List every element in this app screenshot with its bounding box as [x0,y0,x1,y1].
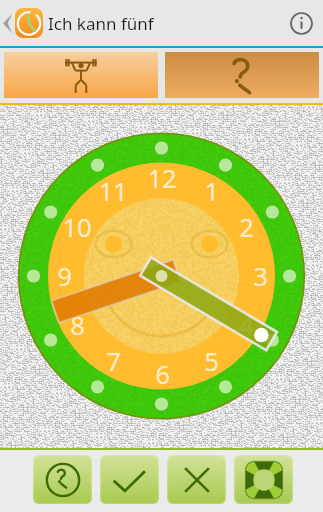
staticText: 11 [98,174,128,209]
button[interactable]: Info [279,0,323,46]
staticText: 6 [155,357,170,392]
button[interactable]: Practice [4,52,158,98]
staticText: 8 [70,308,85,343]
other: Clock app icon [15,8,43,38]
staticText: 7 [106,344,121,379]
button[interactable]: Quiz [165,52,319,98]
staticText: 5 [204,344,219,379]
staticText: 9 [57,259,72,294]
staticText: 2 [239,210,254,245]
staticText: 1 [204,174,219,209]
button[interactable]: Help [234,455,293,504]
button[interactable]: Wrong [167,455,226,504]
button[interactable]: Hint [33,455,92,504]
staticText: 3 [253,259,268,294]
staticText: 12 [147,161,177,196]
staticText: Ich kann fünf [48,12,154,35]
button[interactable]: Back [0,0,15,46]
staticText: 4 [239,308,254,343]
button[interactable]: Correct [100,455,159,504]
staticText: 10 [62,210,92,245]
